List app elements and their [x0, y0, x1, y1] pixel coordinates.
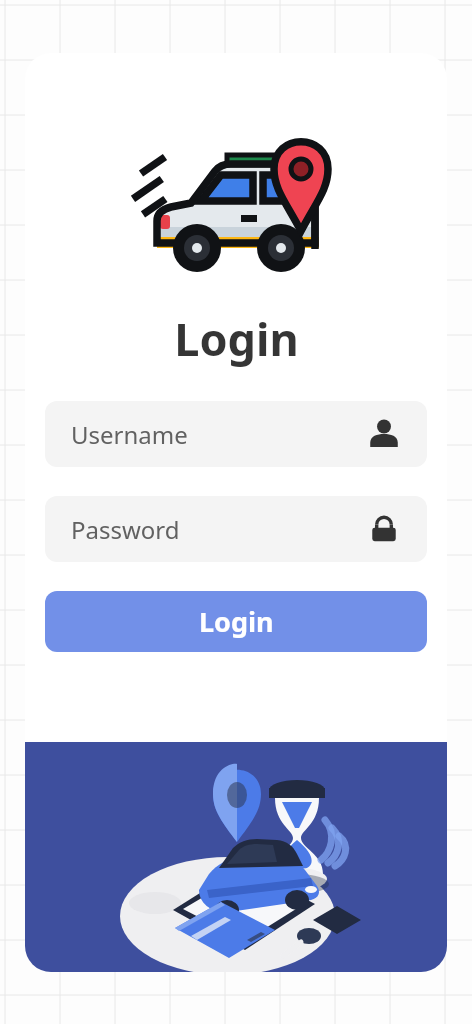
button[interactable]: Password: [45, 496, 427, 562]
button[interactable]: Username: [45, 401, 427, 467]
staticText: Username: [71, 418, 367, 451]
staticText: Password: [71, 513, 367, 546]
button[interactable]: Login: [45, 591, 427, 652]
staticText: Login: [199, 603, 274, 640]
staticText: Login: [174, 308, 299, 369]
